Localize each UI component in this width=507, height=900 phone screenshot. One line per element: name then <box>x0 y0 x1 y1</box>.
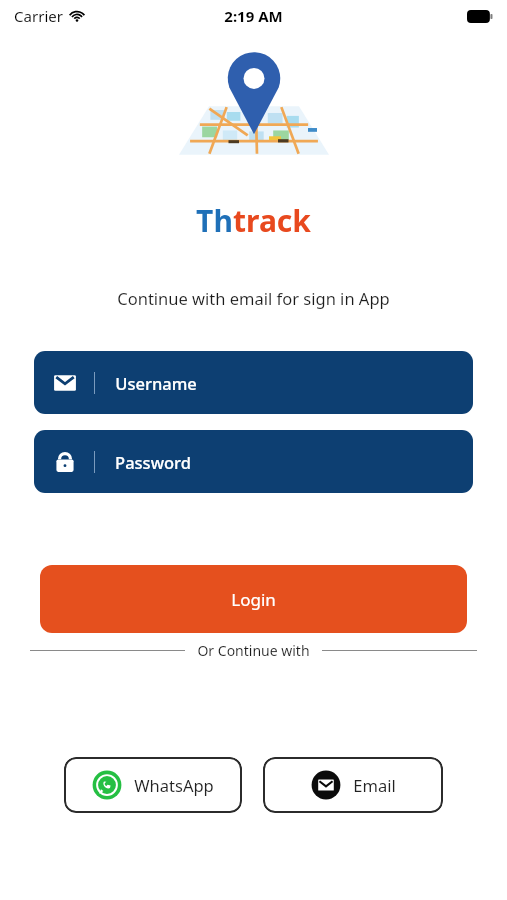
button[interactable]: Login <box>40 565 467 633</box>
staticText: Or Continue with <box>197 641 310 660</box>
button[interactable]: Username <box>34 351 473 414</box>
staticText: Carrier <box>14 6 63 26</box>
staticText: Password <box>115 451 191 473</box>
button[interactable]: WhatsApp <box>64 757 242 813</box>
button[interactable]: Password <box>34 430 473 493</box>
staticText: Username <box>115 372 197 394</box>
staticText: 2:19 AM <box>224 6 283 26</box>
button[interactable]: Email <box>263 757 443 813</box>
staticText: WhatsApp <box>134 774 214 796</box>
staticText: Continue with email for sign in App <box>117 287 390 309</box>
staticText: Th <box>196 200 233 241</box>
staticText: track <box>233 200 311 241</box>
staticText: Login <box>231 588 276 611</box>
staticText: Email <box>353 774 396 796</box>
